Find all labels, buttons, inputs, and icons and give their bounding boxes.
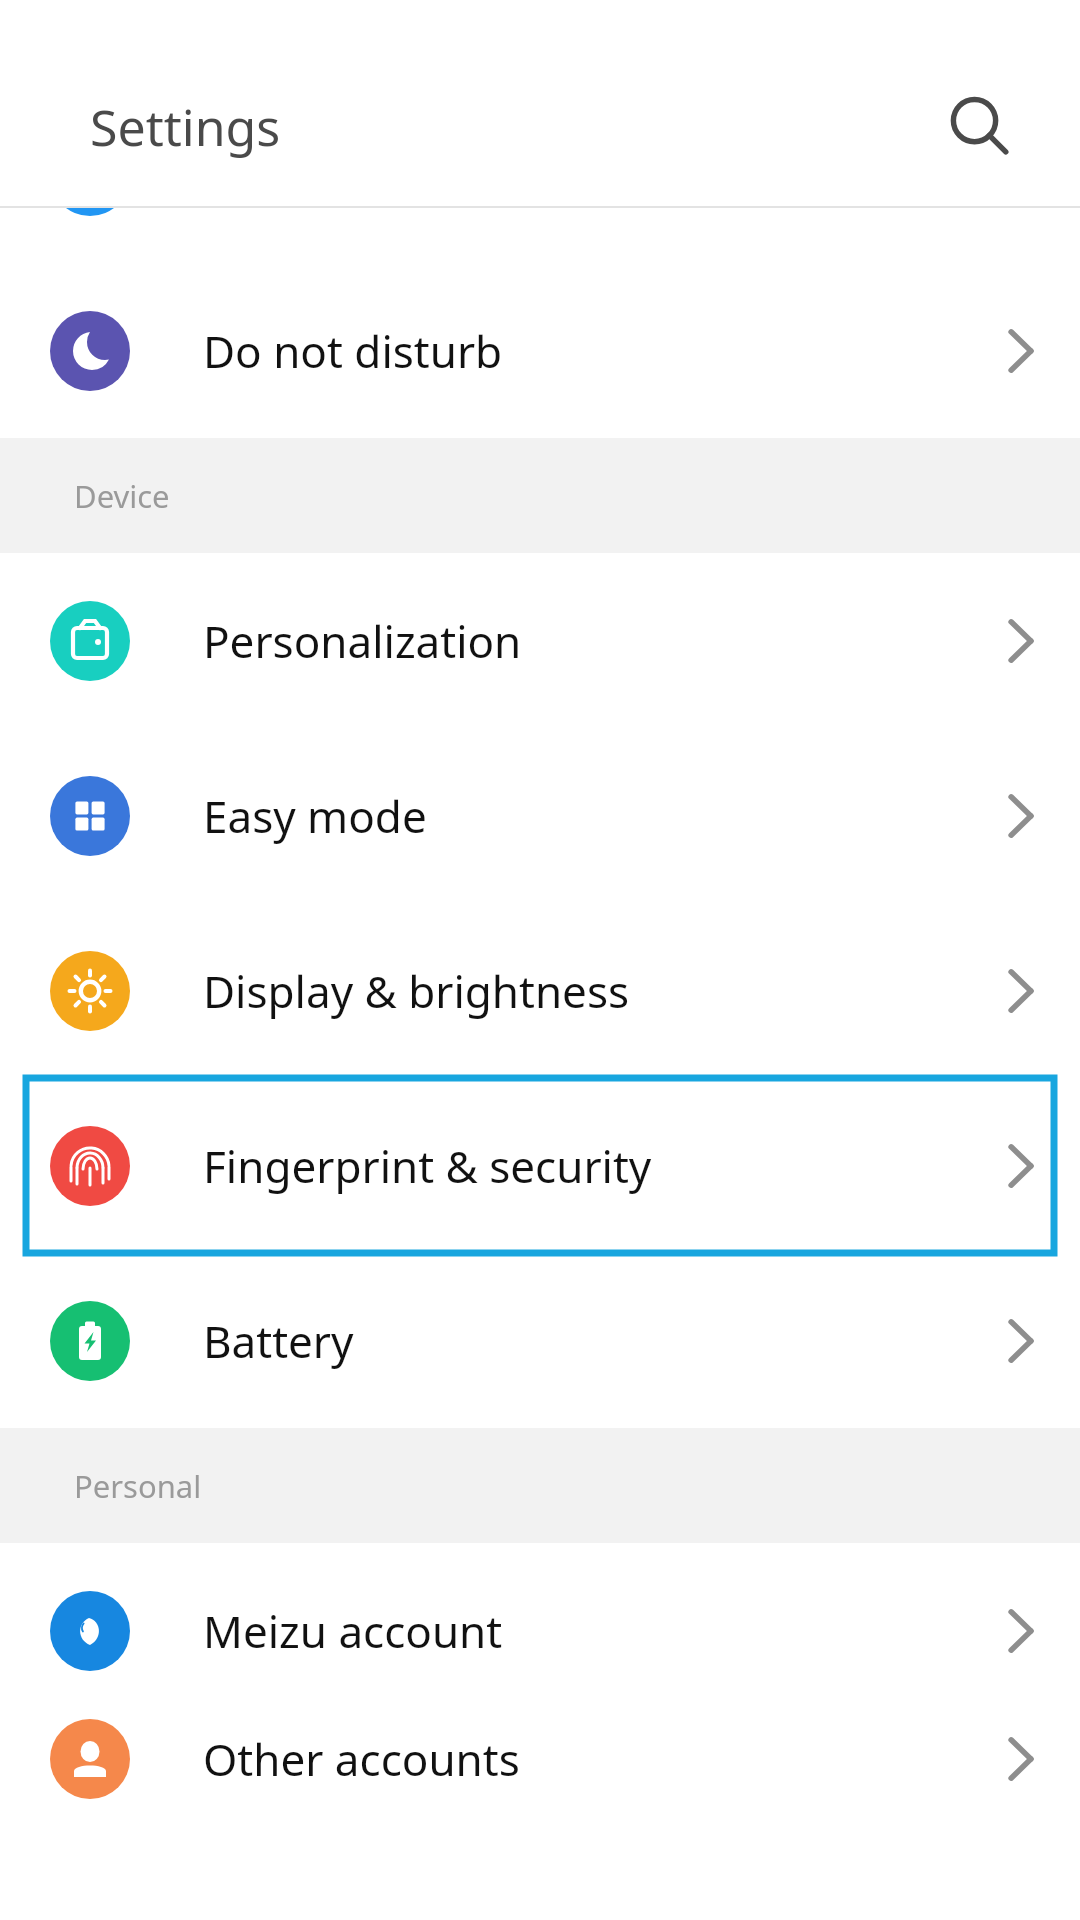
staticText: Personalization [203,611,1008,671]
button[interactable]: Do not disturb [0,263,1080,438]
button[interactable]: Fingerprint & security [0,1078,1080,1253]
staticText: Easy mode [203,786,1008,846]
staticText: Personal [74,1465,202,1507]
button[interactable]: Meizu account [0,1543,1080,1718]
staticText: Battery [203,1311,1008,1371]
staticText: Meizu account [203,1601,1008,1661]
staticText: Display & brightness [203,961,1008,1021]
staticText: Other accounts [203,1729,1008,1789]
button[interactable]: Battery [0,1253,1080,1428]
button[interactable]: Display & brightness [0,903,1080,1078]
staticText: Fingerprint & security [203,1136,1008,1196]
staticText: Device [74,475,170,517]
button[interactable]: Sounds & vibration [0,208,1080,263]
staticText: Do not disturb [203,321,1008,381]
staticText: Settings [90,93,281,161]
button[interactable]: Personalization [0,553,1080,728]
button[interactable]: Easy mode [0,728,1080,903]
button[interactable]: Other accounts [0,1718,1080,1800]
button[interactable]: Search [924,72,1034,182]
